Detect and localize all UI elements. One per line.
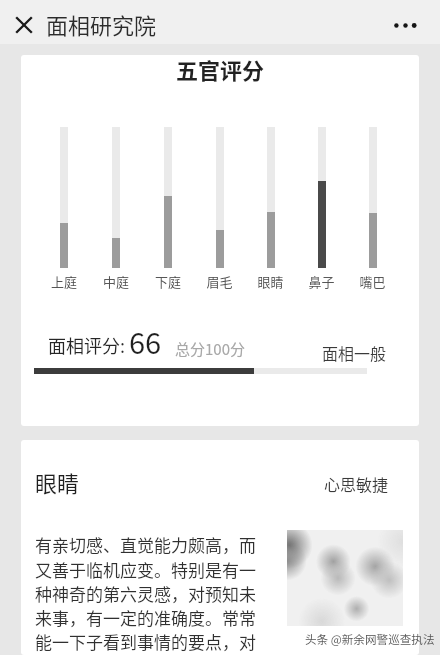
staticText: 嘴巴 — [347, 272, 398, 291]
staticText: 面相研究院 — [46, 8, 157, 40]
staticText: 有亲切感、直觉能力颇高，而又善于临机应变。特别是有一种神奇的第六灵感，对预知未来… — [35, 532, 259, 655]
staticText: 中庭 — [90, 272, 142, 291]
staticText: 眼睛 — [35, 466, 80, 498]
staticText: 心思敏捷 — [324, 472, 389, 495]
staticText: 总分100分 — [175, 338, 245, 360]
staticText: 鼻子 — [296, 272, 347, 291]
button[interactable]: Close — [3, 4, 45, 46]
staticText: 眼睛 — [245, 272, 296, 291]
staticText: 上庭 — [38, 272, 90, 291]
staticText: 面相评分: — [48, 332, 126, 358]
staticText: 面相一般 — [322, 341, 387, 364]
button[interactable]: More options — [383, 4, 427, 46]
staticText: 66 — [129, 320, 162, 362]
staticText: 头条 @新余网警巡查执法 — [305, 631, 435, 648]
staticText: 下庭 — [142, 272, 194, 291]
staticText: 五官评分 — [21, 55, 419, 85]
staticText: 眉毛 — [194, 272, 245, 291]
